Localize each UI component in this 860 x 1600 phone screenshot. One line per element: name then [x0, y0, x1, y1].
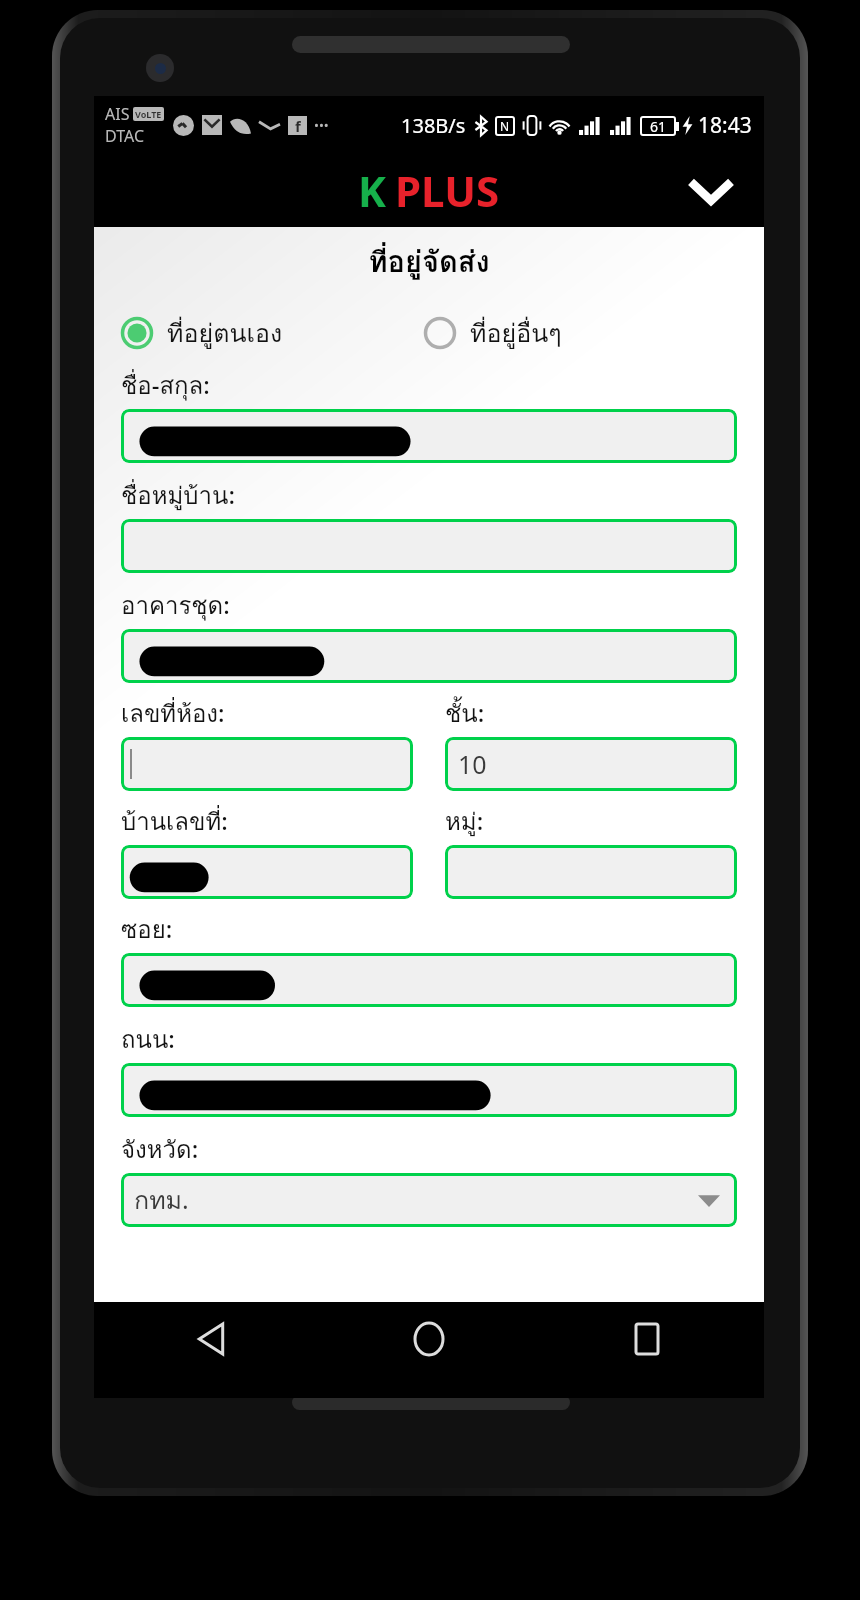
- staticText: ชั้น:: [445, 694, 485, 732]
- staticText: PLUS: [395, 162, 500, 219]
- button[interactable]: ที่อยู่อื่นๆ: [423, 313, 562, 353]
- button[interactable]: [121, 845, 413, 899]
- staticText: f: [295, 116, 301, 135]
- staticText: 61: [650, 117, 667, 136]
- button[interactable]: [121, 737, 413, 791]
- button[interactable]: Home: [406, 1316, 452, 1362]
- button[interactable]: [445, 845, 737, 899]
- button[interactable]: กทม.: [121, 1173, 737, 1227]
- staticText: กทม.: [134, 1180, 189, 1220]
- staticText: DTAC: [105, 125, 144, 147]
- staticText: ที่อยู่อื่นๆ: [470, 313, 562, 353]
- staticText: บ้านเลขที่:: [121, 802, 228, 840]
- staticText: VoLTE: [135, 108, 162, 120]
- button[interactable]: [121, 409, 737, 463]
- staticText: ชื่อ-สกุล:: [121, 366, 210, 404]
- button[interactable]: Recents: [624, 1316, 670, 1362]
- button[interactable]: 10: [445, 737, 737, 791]
- button[interactable]: [121, 519, 737, 573]
- button[interactable]: [121, 629, 737, 683]
- staticText: 18:43: [698, 111, 752, 140]
- button[interactable]: [121, 953, 737, 1007]
- staticText: หมู่:: [445, 802, 484, 840]
- staticText: ที่อยู่จัดส่ง: [94, 239, 764, 285]
- staticText: 10: [458, 747, 487, 781]
- staticText: 138B/s: [401, 112, 466, 139]
- staticText: อาคารชุด:: [121, 586, 230, 624]
- staticText: จังหวัด:: [121, 1130, 199, 1168]
- button[interactable]: Collapse: [682, 162, 740, 220]
- button[interactable]: Back: [188, 1316, 234, 1362]
- staticText: K: [358, 162, 386, 219]
- button[interactable]: ที่อยู่ตนเอง: [120, 313, 423, 353]
- staticText: N: [500, 118, 510, 134]
- staticText: ชื่อหมู่บ้าน:: [121, 476, 235, 514]
- staticText: ถนน:: [121, 1020, 175, 1058]
- staticText: ซอย:: [121, 910, 173, 948]
- staticText: •••: [314, 116, 329, 134]
- staticText: เลขที่ห้อง:: [121, 694, 225, 732]
- staticText: AIS: [105, 103, 130, 125]
- staticText: ที่อยู่ตนเอง: [167, 313, 283, 353]
- button[interactable]: [121, 1063, 737, 1117]
